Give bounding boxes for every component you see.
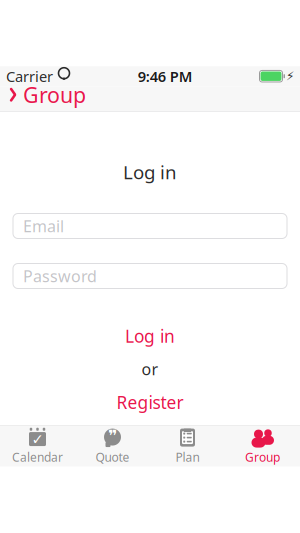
- button[interactable]: Log in: [111, 321, 189, 350]
- staticText: 9:46 PM: [138, 66, 193, 86]
- button[interactable]: Group: [0, 76, 86, 113]
- staticText: Carrier: [6, 66, 53, 86]
- staticText: Email: [23, 215, 64, 237]
- staticText: Plan: [175, 449, 199, 465]
- staticText: Quote: [95, 449, 129, 465]
- staticText: Register: [116, 391, 183, 414]
- staticText: or: [141, 358, 158, 380]
- staticText: ✓: [31, 431, 43, 447]
- staticText: ⚡︎: [286, 69, 294, 83]
- staticText: Log in: [123, 160, 177, 184]
- button[interactable]: ❞: [75, 424, 150, 468]
- button[interactable]: Register: [102, 388, 197, 417]
- button[interactable]: ✓: [0, 424, 75, 468]
- staticText: Password: [23, 265, 97, 287]
- staticText: ❞: [108, 427, 117, 445]
- button[interactable]: Group: [225, 424, 300, 468]
- button[interactable]: Plan: [150, 424, 225, 468]
- staticText: Calendar: [12, 449, 63, 465]
- staticText: Group: [23, 80, 86, 109]
- staticText: Log in: [125, 324, 175, 347]
- staticText: Group: [245, 449, 280, 465]
